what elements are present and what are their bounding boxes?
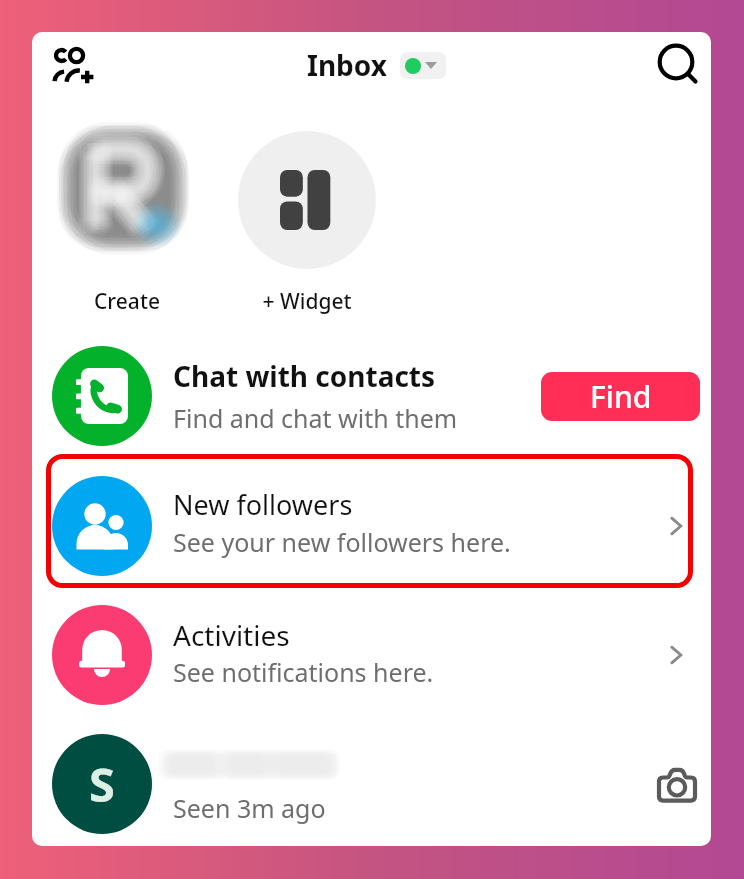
button[interactable]: + Widget — [236, 122, 378, 322]
staticText: Chat with contacts — [173, 357, 436, 395]
staticText: S — [89, 752, 115, 816]
button[interactable]: Search — [648, 36, 704, 92]
staticText: See notifications here. — [173, 655, 434, 688]
staticText: Find and chat with them — [173, 401, 458, 435]
staticText: New followers — [173, 486, 353, 523]
button[interactable]: New followers — [32, 452, 711, 592]
button[interactable]: Add people — [45, 37, 103, 97]
staticText: + Widget — [262, 287, 352, 316]
button[interactable]: Find — [541, 372, 700, 421]
button[interactable]: Active status — [400, 52, 446, 79]
button[interactable]: S — [32, 734, 711, 834]
staticText: Seen 3m ago — [173, 791, 326, 825]
staticText: Inbox — [307, 46, 387, 84]
staticText: Find — [590, 376, 652, 417]
button[interactable]: Camera — [652, 759, 702, 809]
staticText: Activities — [173, 616, 290, 654]
staticText: See your new followers here. — [173, 525, 511, 559]
button[interactable]: Chat with contacts — [32, 346, 711, 446]
staticText: Create — [94, 287, 160, 316]
button[interactable]: Activities — [32, 605, 711, 705]
button[interactable]: Create — [56, 122, 198, 322]
